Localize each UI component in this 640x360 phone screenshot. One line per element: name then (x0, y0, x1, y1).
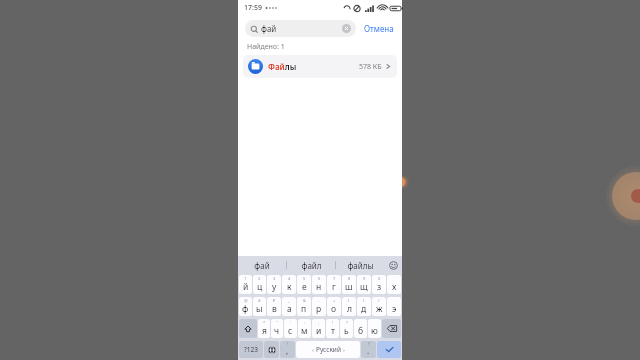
button[interactable]: 7 (327, 275, 341, 294)
button[interactable]: Удалить (382, 319, 401, 338)
button[interactable]: 0 (372, 275, 386, 294)
button[interactable]: ! (326, 319, 339, 338)
staticText: › (343, 346, 345, 354)
button[interactable]: @ (239, 297, 252, 316)
staticText: ы (256, 303, 263, 315)
staticText: & (303, 298, 306, 303)
button[interactable]: . (361, 341, 376, 358)
staticText: в (272, 303, 277, 315)
staticText: . (367, 345, 370, 356)
staticText: Найдено: 1 (247, 42, 285, 52)
button[interactable]: 2 (253, 275, 266, 294)
button[interactable]: файлы (336, 257, 384, 273)
staticText: ф (242, 303, 249, 315)
staticText: ц (257, 281, 263, 293)
staticText: ю (371, 325, 378, 337)
button[interactable]: Ввод (377, 341, 401, 358)
button[interactable]: _ (282, 297, 296, 316)
staticText: х (392, 281, 397, 293)
staticText: л (347, 303, 352, 315)
staticText: - (318, 298, 320, 303)
staticText: ! (287, 341, 289, 346)
button[interactable]: ? (340, 319, 353, 338)
staticText: ?123 (244, 345, 258, 354)
button[interactable]: & (297, 297, 311, 316)
staticText: е (302, 281, 307, 293)
button[interactable]: х (387, 275, 401, 294)
button[interactable]: ' (284, 319, 297, 338)
button[interactable]: , (280, 341, 295, 358)
staticText: щ (360, 281, 368, 293)
staticText: г (332, 281, 336, 293)
staticText: " (276, 320, 278, 325)
button[interactable]: ) (357, 297, 371, 316)
staticText: 3 (273, 276, 276, 281)
button[interactable]: Отмена (362, 20, 396, 37)
staticText: _ (288, 298, 290, 303)
staticText: файл (301, 260, 322, 271)
button[interactable]: 9 (357, 275, 371, 294)
button[interactable]: 4 (282, 275, 296, 294)
staticText: 0 (378, 276, 381, 281)
button[interactable]: ?123 (239, 341, 263, 358)
button[interactable]: " (271, 319, 283, 338)
staticText: 5 (303, 276, 306, 281)
button[interactable]: 3 (267, 275, 281, 294)
staticText: Файлы (268, 61, 297, 72)
staticText: 1 (244, 276, 247, 281)
staticText: ) (363, 298, 365, 303)
staticText: фай (254, 260, 270, 271)
button[interactable]: файл (287, 257, 335, 273)
staticText: файлы (347, 260, 374, 271)
button[interactable]: Сменить язык (264, 341, 279, 358)
button[interactable]: ‹ (296, 341, 360, 358)
button[interactable]: / (372, 297, 386, 316)
button[interactable]: 6 (312, 275, 326, 294)
staticText: м (301, 325, 308, 337)
staticText: 4 (288, 276, 291, 281)
staticText: 17:59 (244, 3, 262, 13)
staticText: ч (274, 325, 280, 337)
staticText: с (288, 325, 293, 337)
button[interactable]: Shift (239, 319, 257, 338)
staticText: я (262, 325, 267, 337)
button[interactable]: + (327, 297, 341, 316)
button[interactable]: ю (368, 319, 381, 338)
button[interactable]: б (354, 319, 367, 338)
staticText: Отмена (364, 23, 394, 34)
button[interactable]: фай (245, 20, 356, 37)
staticText: ‹ (312, 346, 314, 354)
staticText: ? (346, 320, 348, 325)
button[interactable]: ; (312, 319, 325, 338)
button[interactable]: Эмодзи (384, 257, 402, 273)
staticText: : (304, 320, 306, 325)
staticText: # (258, 298, 261, 303)
staticText: п (301, 303, 307, 315)
staticText: ! (332, 320, 334, 325)
staticText: ш (345, 281, 353, 293)
staticText: р (316, 303, 322, 315)
staticText: * (263, 320, 266, 325)
button[interactable]: 5 (297, 275, 311, 294)
staticText: фай (261, 23, 277, 34)
button[interactable]: - (312, 297, 326, 316)
button[interactable]: ₽ (267, 297, 281, 316)
button[interactable]: # (253, 297, 266, 316)
button[interactable]: ( (342, 297, 356, 316)
staticText: 7 (333, 276, 336, 281)
button[interactable]: Файлы (243, 55, 397, 78)
button[interactable]: : (298, 319, 311, 338)
staticText: н (316, 281, 322, 293)
button[interactable]: э (387, 297, 401, 316)
staticText: а (287, 303, 292, 315)
staticText: и (316, 325, 322, 337)
button[interactable]: * (258, 319, 270, 338)
button[interactable]: 1 (239, 275, 252, 294)
staticText: 8 (348, 276, 351, 281)
staticText: / (378, 298, 380, 303)
button[interactable]: Очистить (342, 24, 351, 33)
staticText: ж (376, 303, 383, 315)
button[interactable]: фай (238, 257, 286, 273)
button[interactable]: 8 (342, 275, 356, 294)
staticText: б (358, 325, 364, 337)
